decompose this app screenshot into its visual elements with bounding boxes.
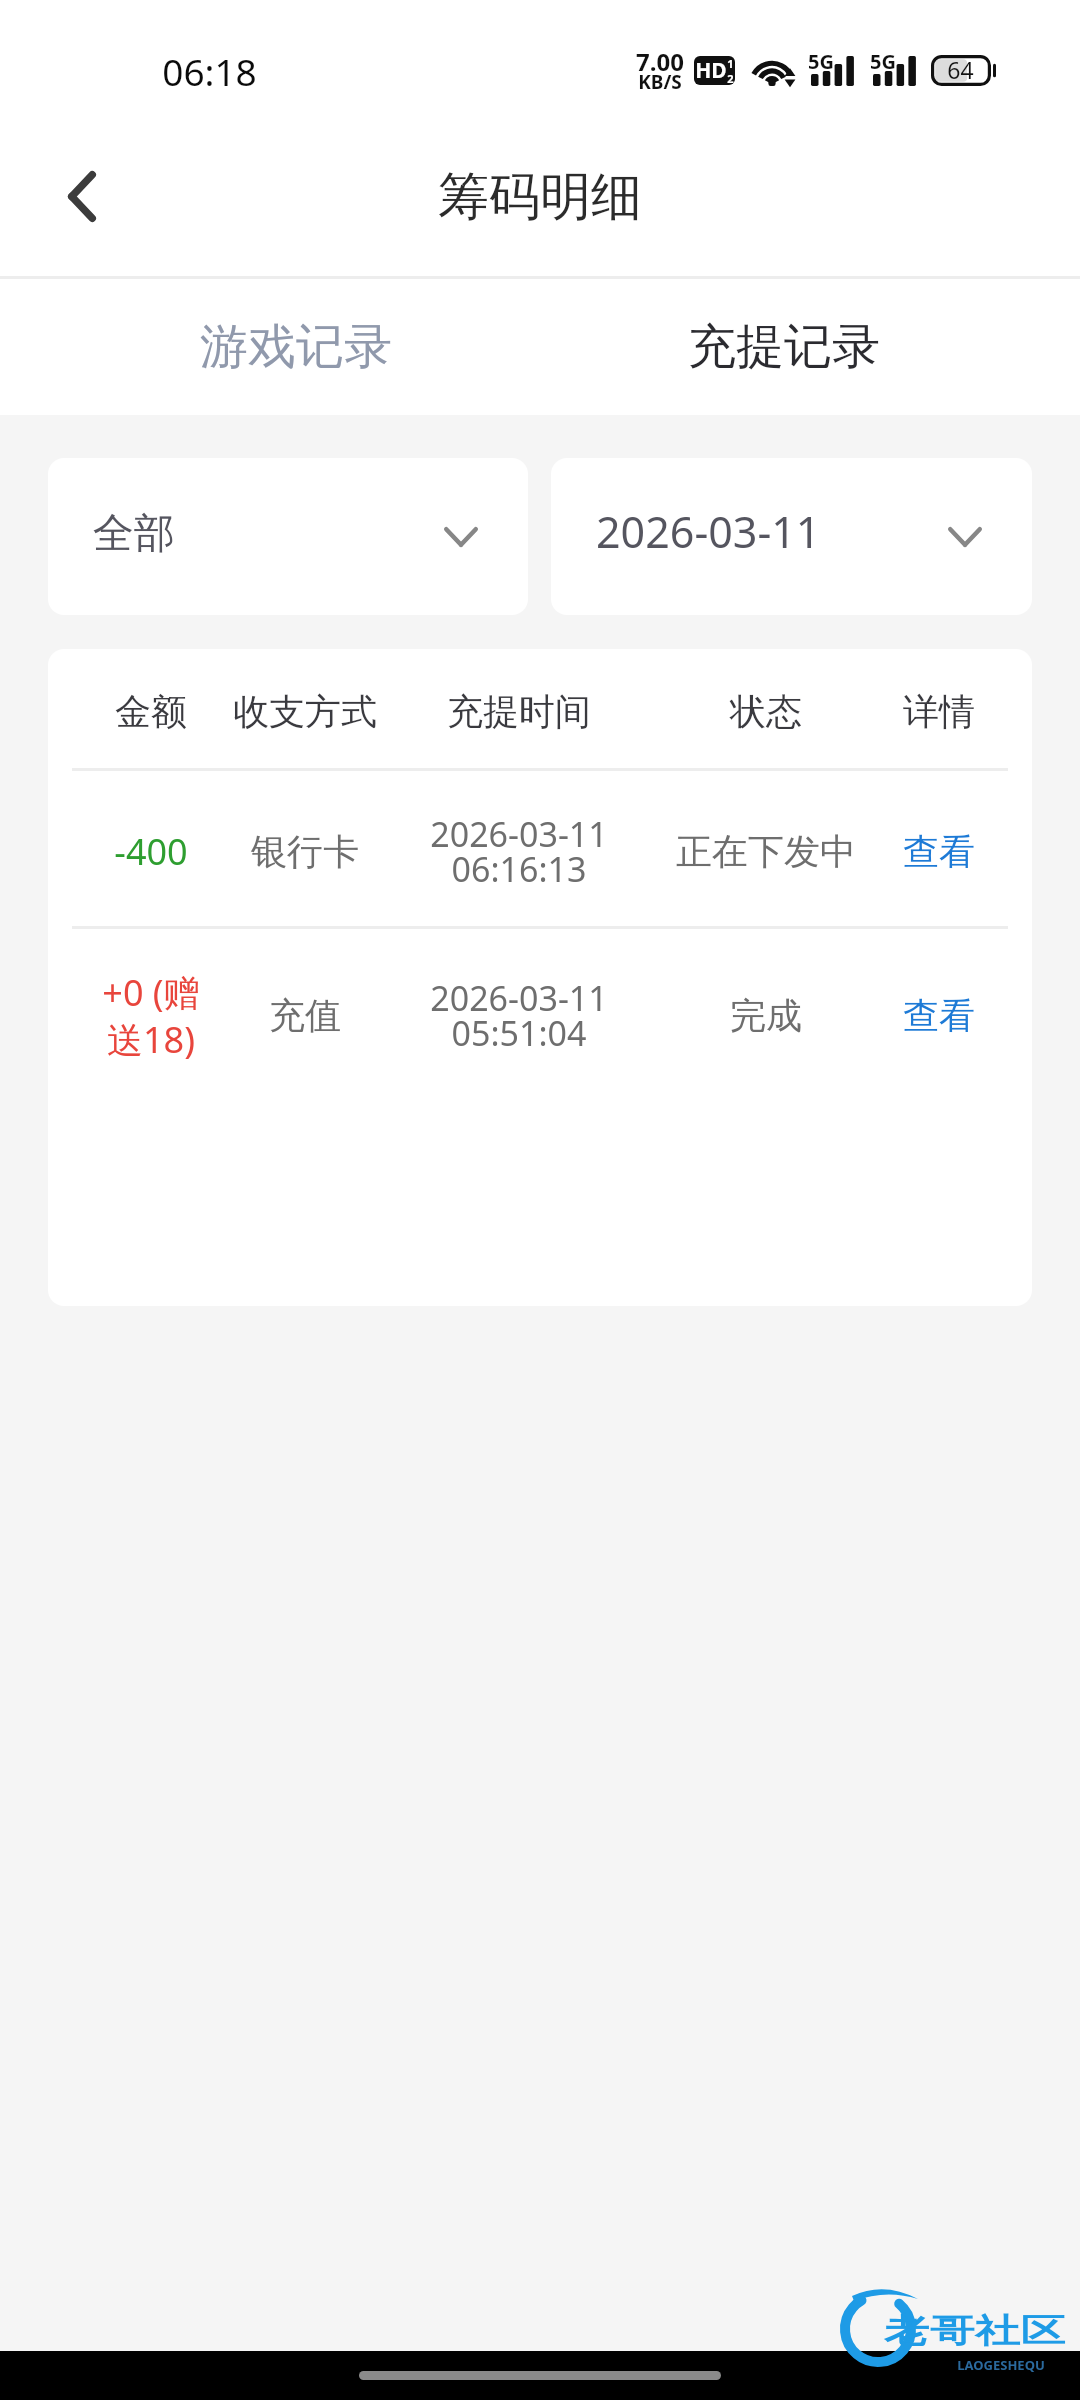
staticText: 2: [727, 71, 734, 85]
staticText: 06:18: [162, 46, 257, 96]
staticText: HD: [695, 56, 727, 85]
staticText: 2026-03-11 06:16:13: [430, 811, 608, 892]
staticText: 5G: [870, 48, 896, 75]
staticText: 完成: [730, 993, 802, 1038]
button[interactable]: 2026-03-11: [551, 458, 1032, 615]
staticText: +0 (赠 送18): [102, 968, 200, 1063]
staticText: -400: [114, 827, 188, 876]
button[interactable]: 全部: [48, 458, 528, 615]
staticText: 2026-03-11 05:51:04: [430, 975, 608, 1056]
button[interactable]: +0 (赠 送18): [48, 929, 1032, 1095]
staticText: 充值: [269, 993, 341, 1038]
staticText: 全部: [93, 508, 175, 560]
button[interactable]: 查看: [889, 819, 989, 884]
staticText: KB/S: [638, 69, 682, 95]
staticText: 游戏记录: [200, 317, 392, 377]
staticText: 64: [947, 54, 974, 85]
staticText: 5G: [808, 48, 834, 75]
staticText: 查看: [903, 829, 975, 874]
staticText: 收支方式: [233, 689, 377, 734]
staticText: 详情: [903, 689, 975, 734]
button[interactable]: 游戏记录: [52, 279, 540, 415]
staticText: 1: [727, 56, 734, 71]
staticText: 查看: [903, 993, 975, 1038]
staticText: 筹码明细: [438, 165, 642, 229]
staticText: LAOGESHEQU: [957, 2356, 1045, 2374]
staticText: 状态: [730, 689, 802, 734]
button[interactable]: -400: [48, 771, 1032, 926]
staticText: 金额: [115, 689, 187, 734]
button[interactable]: 充提记录: [540, 279, 1028, 415]
staticText: 2026-03-11: [596, 502, 821, 561]
button[interactable]: Back: [36, 150, 128, 242]
staticText: 银行卡: [251, 829, 359, 874]
staticText: 充提记录: [688, 317, 880, 377]
staticText: 老哥社区: [884, 2311, 1066, 2352]
staticText: 正在下发中: [676, 829, 856, 874]
button[interactable]: 查看: [889, 983, 989, 1048]
staticText: 充提时间: [447, 689, 591, 734]
staticText: 7.00: [636, 45, 684, 78]
